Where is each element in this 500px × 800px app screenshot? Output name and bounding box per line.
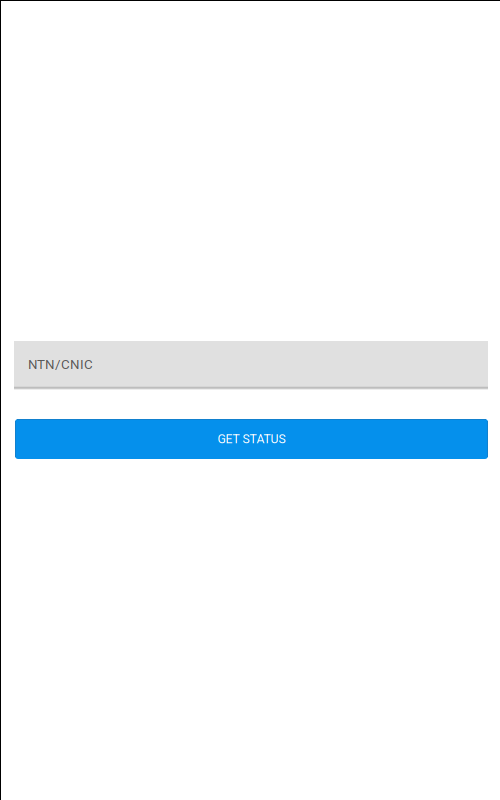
button[interactable]: NTN/CNIC text field: [14, 341, 488, 390]
button[interactable]: GET STATUS: [15, 419, 488, 459]
staticText: GET STATUS: [217, 432, 285, 446]
staticText: NTN/CNIC: [28, 357, 93, 372]
